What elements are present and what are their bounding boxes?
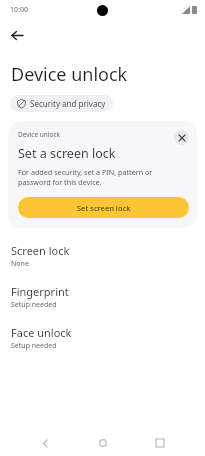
staticText: For added security, set a PIN, pattern o… <box>18 167 185 187</box>
staticText: Setup needed <box>11 300 57 310</box>
staticText: Screen lock <box>11 243 70 258</box>
button[interactable]: Back <box>4 22 30 48</box>
button[interactable]: Screen lock <box>0 242 205 270</box>
button[interactable]: Face unlock <box>0 324 205 352</box>
staticText: Device unlock <box>18 130 60 139</box>
staticText: Setup needed <box>11 341 57 351</box>
button[interactable]: Back <box>33 431 57 455</box>
button[interactable]: Home <box>91 431 115 455</box>
staticText: 10:00 <box>10 5 28 15</box>
staticText: Device unlock <box>11 62 128 87</box>
button[interactable]: Dismiss <box>174 130 189 145</box>
button[interactable]: Set screen lock <box>18 197 189 218</box>
staticText: Face unlock <box>11 325 72 340</box>
button[interactable]: Recent apps <box>148 431 172 455</box>
button[interactable]: Fingerprint <box>0 283 205 311</box>
staticText: Set screen lock <box>77 203 131 213</box>
staticText: None <box>11 259 29 269</box>
staticText: Fingerprint <box>11 284 69 299</box>
staticText: Security and privacy <box>30 98 106 109</box>
button[interactable]: Security and privacy <box>10 95 113 112</box>
staticText: Set a screen lock <box>18 145 116 162</box>
